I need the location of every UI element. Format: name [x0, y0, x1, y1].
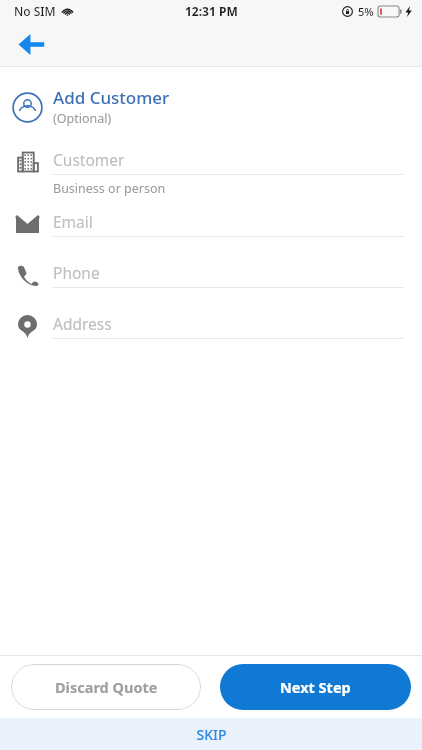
staticText: 12:31 PM: [185, 3, 238, 19]
staticText: Address: [53, 313, 112, 334]
button[interactable]: Customer: [0, 144, 422, 206]
staticText: Next Step: [280, 677, 351, 697]
button[interactable]: Back: [10, 23, 52, 65]
button[interactable]: Add Customer: [0, 86, 422, 127]
staticText: Discard Quote: [55, 677, 158, 697]
button[interactable]: Phone: [0, 257, 422, 308]
staticText: No SIM: [14, 3, 56, 19]
staticText: Add Customer: [53, 86, 170, 109]
button[interactable]: SKIP: [0, 718, 422, 750]
staticText: Email: [53, 211, 93, 232]
staticText: (Optional): [53, 110, 112, 127]
button[interactable]: Address: [0, 308, 422, 359]
button[interactable]: Email: [0, 206, 422, 257]
staticText: 5%: [358, 4, 374, 19]
button[interactable]: Discard Quote: [11, 664, 201, 710]
staticText: Phone: [53, 262, 100, 283]
staticText: Business or person: [53, 180, 166, 197]
staticText: SKIP: [196, 725, 227, 744]
button[interactable]: Next Step: [220, 664, 411, 710]
staticText: Customer: [53, 149, 125, 170]
